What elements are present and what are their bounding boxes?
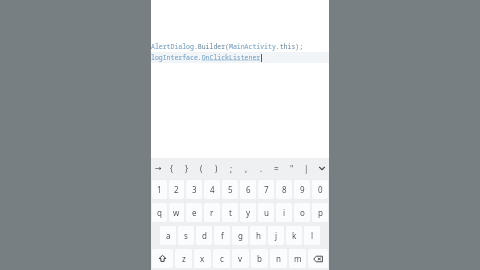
button[interactable]: 9 [294,180,310,199]
staticText: s [184,230,188,241]
button[interactable]: 0 [312,180,328,199]
button[interactable]: ; [224,158,239,178]
staticText: m [294,253,302,264]
staticText: 3 [192,184,197,195]
staticText: a [166,230,171,241]
button[interactable]: w [169,203,184,222]
staticText: j [275,230,278,241]
button[interactable]: 5 [222,180,238,199]
button[interactable]: , [239,158,254,178]
staticText: 1 [157,184,162,195]
button[interactable]: h [250,226,266,245]
staticText: h [256,230,261,241]
staticText: x [200,253,205,264]
staticText: 5 [228,184,233,195]
button[interactable]: o [294,203,310,222]
button[interactable]: r [204,203,220,222]
button[interactable]: q [152,203,167,222]
staticText: v [238,253,243,264]
staticText: 0 [318,184,323,195]
button[interactable]: f [214,226,230,245]
staticText: 2 [174,184,179,195]
button[interactable]: x [194,249,211,268]
button[interactable]: m [289,249,306,268]
staticText: e [192,207,197,218]
button[interactable]: Hide keyboard [314,158,329,178]
button[interactable]: y [240,203,256,222]
staticText: " [290,163,294,174]
button[interactable]: j [268,226,284,245]
button[interactable]: u [258,203,274,222]
staticText: AlertDialog.Builder(MainActivity.this); [151,42,304,51]
button[interactable]: = [269,158,284,178]
staticText: ) [215,163,218,174]
staticText: 7 [264,184,269,195]
button[interactable]: b [251,249,268,268]
button[interactable]: 7 [258,180,274,199]
staticText: b [257,253,262,264]
staticText: w [173,207,180,218]
button[interactable]: AlertDialog.Builder(MainActivity.this); [151,0,329,158]
button[interactable]: . [254,158,269,178]
button[interactable]: n [270,249,287,268]
staticText: logInterface.OnClickListener [151,53,261,62]
staticText: = [274,163,279,174]
button[interactable]: s [178,226,194,245]
staticText: , [245,163,248,174]
staticText: 6 [246,184,251,195]
button[interactable]: d [196,226,212,245]
staticText: g [238,230,243,241]
staticText: ( [200,163,203,174]
button[interactable]: 8 [276,180,292,199]
button[interactable]: t [222,203,238,222]
button[interactable]: Shift [152,249,173,268]
button[interactable]: { [165,158,179,178]
button[interactable]: 3 [186,180,202,199]
staticText: { [170,163,174,174]
staticText: l [311,230,314,241]
button[interactable]: ) [209,158,224,178]
staticText: → [155,164,162,173]
staticText: 4 [210,184,215,195]
staticText: y [246,207,251,218]
staticText: 8 [282,184,287,195]
staticText: | [304,163,309,174]
button[interactable]: 2 [169,180,184,199]
button[interactable]: | [299,158,314,178]
staticText: } [185,163,189,174]
staticText: c [220,253,224,264]
button[interactable]: i [276,203,292,222]
button[interactable]: p [312,203,328,222]
staticText: k [292,230,297,241]
staticText: r [210,207,214,218]
button[interactable]: " [284,158,299,178]
staticText: d [202,230,207,241]
button[interactable]: z [175,249,192,268]
button[interactable]: 6 [240,180,256,199]
staticText: ; [230,163,233,174]
button[interactable]: 4 [204,180,220,199]
staticText: p [318,207,323,218]
staticText: q [157,207,162,218]
staticText: u [264,207,269,218]
button[interactable]: e [186,203,202,222]
button[interactable]: 1 [152,180,167,199]
staticText: 9 [300,184,305,195]
button[interactable]: Backspace [308,249,328,268]
staticText: i [283,207,286,218]
staticText: o [300,207,305,218]
button[interactable]: → [151,158,165,178]
button[interactable]: ( [194,158,209,178]
staticText: n [276,253,281,264]
button[interactable]: } [179,158,194,178]
staticText: z [182,253,186,264]
button[interactable]: k [286,226,302,245]
button[interactable]: c [213,249,230,268]
button[interactable]: v [232,249,249,268]
button[interactable]: l [304,226,320,245]
staticText: . [260,163,263,174]
staticText: t [229,207,232,218]
button[interactable]: g [232,226,248,245]
staticText: f [221,230,224,241]
button[interactable]: a [160,226,176,245]
